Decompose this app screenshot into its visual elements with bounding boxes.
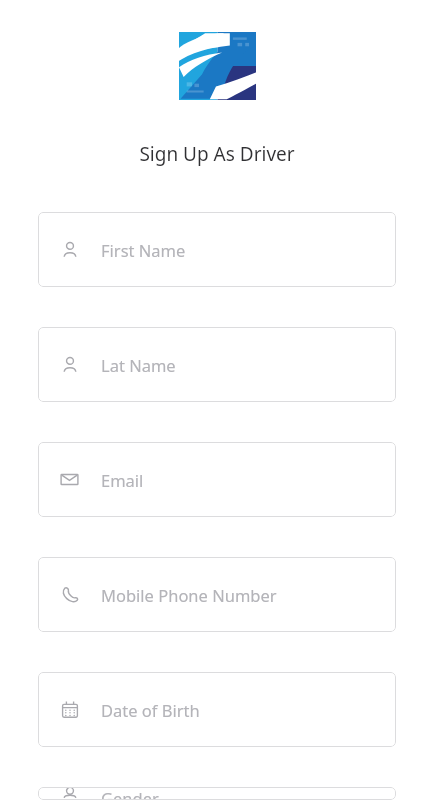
staticText: Email	[101, 469, 144, 491]
staticText: Mobile Phone Number	[101, 584, 277, 606]
staticText: Lat Name	[101, 354, 176, 376]
button[interactable]: Mobile Phone Number	[38, 557, 396, 632]
button[interactable]: Lat Name	[38, 327, 396, 402]
staticText: Date of Birth	[101, 699, 200, 721]
staticText: Sign Up As Driver	[0, 141, 434, 167]
button[interactable]: Date of Birth	[38, 672, 396, 747]
staticText: First Name	[101, 239, 186, 261]
button[interactable]: Email	[38, 442, 396, 517]
staticText: Gender	[101, 787, 159, 800]
button[interactable]: Gender	[38, 787, 396, 800]
button[interactable]: First Name	[38, 212, 396, 287]
